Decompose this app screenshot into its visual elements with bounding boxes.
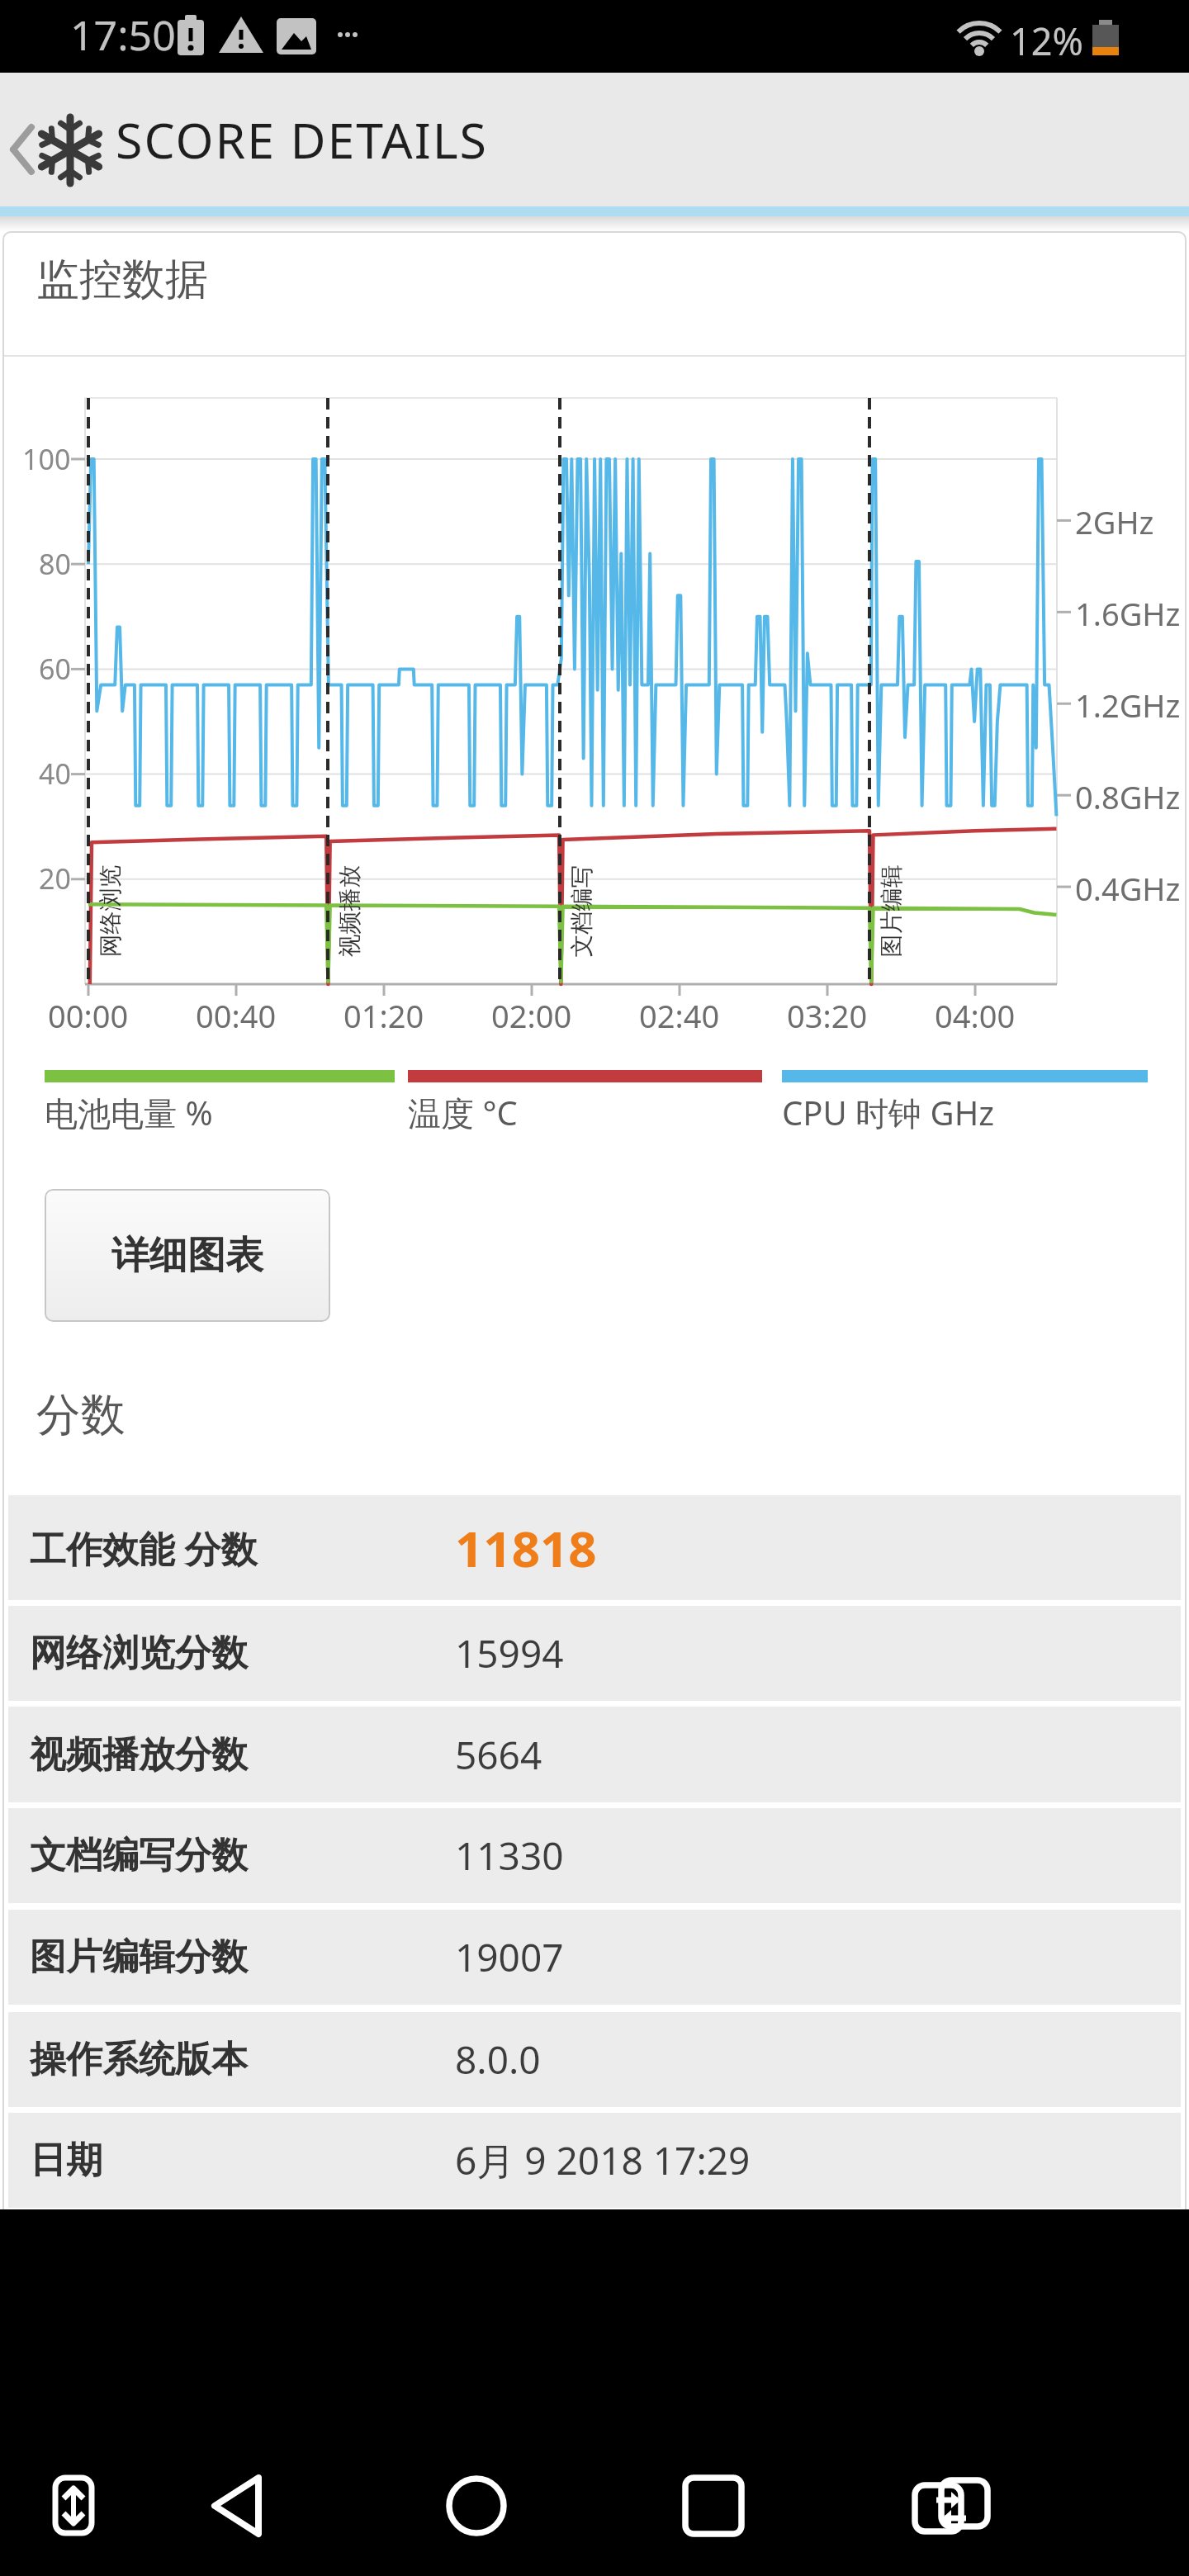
button[interactable]: 视频播放分数 [8,1707,1181,1802]
staticText: 15994 [455,1627,564,1679]
staticText: 0.4GHz [1075,867,1181,910]
staticText: 11818 [455,1514,597,1582]
staticText: 100 [22,440,71,478]
staticText: 视频播放 [335,865,364,957]
button[interactable]: 操作系统版本 [8,2012,1181,2107]
staticText: 日期 [30,2138,102,2183]
staticText: 12% [1010,16,1083,66]
staticText: 工作效能 分数 [30,1523,258,1573]
staticText: 文档编写 [567,865,596,957]
staticText: 分数 [36,1387,126,1443]
staticText: 00:00 [48,994,129,1037]
staticText: 0.8GHz [1075,775,1181,818]
staticText: 80 [39,545,71,583]
button[interactable] [39,2465,108,2534]
staticText: 视频播放分数 [30,1732,248,1778]
staticText: 图片编辑分数 [30,1934,248,1980]
staticText: 03:20 [787,994,868,1037]
staticText: 8.0.0 [455,2034,541,2086]
staticText: SCORE DETAILS [116,107,488,173]
button[interactable]: 网络浏览分数 [8,1606,1181,1701]
button[interactable] [679,2465,748,2534]
staticText: 20 [39,859,71,897]
button[interactable] [0,73,116,206]
staticText: 操作系统版本 [30,2037,248,2082]
staticText: 02:40 [639,994,720,1037]
staticText: 电池电量 % [45,1090,213,1135]
staticText: 网络浏览 [95,865,124,957]
staticText: 5664 [455,1729,542,1781]
staticText: 网络浏览分数 [30,1631,248,1676]
staticText: 60 [39,650,71,688]
button[interactable]: 详细图表 [45,1189,330,1322]
staticText: CPU 时钟 GHz [782,1090,995,1135]
staticText: 6月 9 2018 17:29 [455,2134,751,2186]
button[interactable]: 文档编写分数 [8,1808,1181,1903]
staticText: 11330 [455,1830,564,1882]
staticText: 00:40 [196,994,277,1037]
button[interactable] [442,2465,511,2534]
staticText: 1.6GHz [1075,592,1181,635]
button[interactable] [917,2465,986,2534]
staticText: 01:20 [343,994,424,1037]
staticText: 温度 °C [408,1090,518,1135]
staticText: 19007 [455,1931,564,1983]
staticText: 02:00 [491,994,572,1037]
staticText: 40 [39,755,71,793]
staticText: 详细图表 [111,1232,263,1280]
staticText: 图片编辑 [876,865,905,957]
button[interactable]: 工作效能 分数 [8,1495,1181,1600]
staticText: 1.2GHz [1075,684,1181,727]
button[interactable] [205,2465,274,2534]
staticText: 文档编写分数 [30,1833,248,1878]
button[interactable]: 日期 [8,2113,1181,2208]
staticText: 04:00 [935,994,1016,1037]
staticText: 2GHz [1075,500,1154,543]
staticText: 监控数据 [36,253,208,307]
button[interactable]: 图片编辑分数 [8,1910,1181,2005]
staticText: 17:50 [70,7,176,63]
